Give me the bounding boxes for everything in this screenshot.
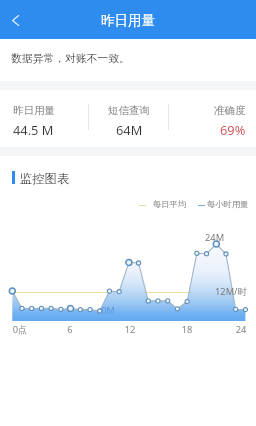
staticText: 数据异常，对账不一致。 <box>11 52 130 66</box>
staticText: 44.5 M <box>13 121 54 138</box>
staticText: 24 <box>227 323 255 336</box>
staticText: 0M <box>101 304 115 317</box>
staticText: 每日平均 <box>153 199 187 209</box>
staticText: 6 <box>56 323 84 336</box>
button[interactable]: 昨日用量 <box>0 94 88 139</box>
staticText: 64M <box>116 121 143 138</box>
staticText: 每小时用量 <box>207 199 249 209</box>
staticText: 昨日用量 <box>101 12 155 29</box>
button[interactable]: Back <box>0 1 31 39</box>
staticText: 12 <box>116 323 144 336</box>
staticText: 12M/时 <box>215 285 247 298</box>
staticText: 准确度 <box>214 104 246 117</box>
staticText: 69% <box>220 121 246 138</box>
staticText: 短信查询 <box>108 104 150 117</box>
staticText: 18 <box>173 323 201 336</box>
button[interactable]: 准确度 <box>169 94 256 139</box>
staticText: 24M <box>205 231 225 244</box>
staticText: 昨日用量 <box>13 104 55 117</box>
staticText: 0点 <box>6 323 34 336</box>
button[interactable]: 短信查询 <box>89 94 169 139</box>
staticText: 监控图表 <box>20 171 70 186</box>
